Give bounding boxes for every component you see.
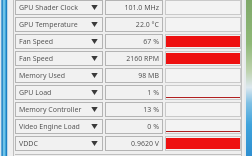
button[interactable]: Select sensor [89,19,100,30]
button[interactable] [165,136,241,151]
button[interactable]: Fan Speed [15,34,103,49]
button[interactable]: Select sensor [89,36,100,47]
button[interactable]: Select sensor [89,53,100,64]
button[interactable]: 67 % [105,34,163,49]
staticText: VDDC [19,139,38,149]
button[interactable] [165,119,241,134]
staticText: GPU Temperature [19,20,78,30]
button[interactable]: Memory Used [15,68,103,83]
button[interactable]: 22.0 °C [105,17,163,32]
button[interactable] [165,0,241,15]
button[interactable]: 2160 RPM [105,51,163,66]
button[interactable]: 98 MB [105,68,163,83]
button[interactable]: Select sensor [89,2,100,13]
staticText: 0.9620 V [131,139,159,149]
button[interactable] [165,34,241,49]
button[interactable]: VDDC [15,136,103,151]
button[interactable]: Select sensor [89,121,100,132]
button[interactable] [165,51,241,66]
staticText: 101.0 MHz [124,3,159,13]
staticText: 1 % [147,88,159,98]
button[interactable]: Select sensor [89,104,100,115]
button[interactable]: 0.9620 V [105,136,163,151]
button[interactable]: Select sensor [89,87,100,98]
button[interactable]: GPU Load [15,85,103,100]
staticText: Memory Used [19,71,66,81]
staticText: 22.0 °C [135,20,159,30]
staticText: 13 % [143,105,159,115]
staticText: Fan Speed [19,54,54,64]
button[interactable]: 0 % [105,119,163,134]
button[interactable] [165,102,241,117]
button[interactable] [165,68,241,83]
button[interactable]: GPU Shader Clock [15,0,103,15]
button[interactable]: Video Engine Load [15,119,103,134]
staticText: GPU Load [19,88,52,98]
button[interactable]: 13 % [105,102,163,117]
staticText: Memory Controller Load [19,105,87,115]
button[interactable]: 101.0 MHz [105,0,163,15]
button[interactable] [165,85,241,100]
staticText: Fan Speed [19,37,54,47]
staticText: GPU Shader Clock [19,3,78,13]
staticText: 98 MB [138,71,159,81]
button[interactable]: 1 % [105,85,163,100]
staticText: 0 % [147,122,159,132]
button[interactable] [165,17,241,32]
button[interactable]: Select sensor [89,70,100,81]
button[interactable]: Fan Speed [15,51,103,66]
button[interactable]: GPU Temperature [15,17,103,32]
button[interactable]: Memory Controller Load [15,102,103,117]
button[interactable]: Select sensor [89,138,100,149]
staticText: 2160 RPM [126,54,159,64]
staticText: 67 % [143,37,159,47]
staticText: Video Engine Load [19,122,80,132]
